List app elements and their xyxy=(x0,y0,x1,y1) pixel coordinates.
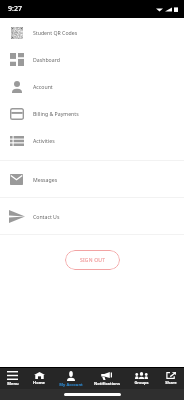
button[interactable]: Groups xyxy=(125,368,157,389)
staticText: Home xyxy=(33,380,45,385)
button[interactable]: Dashboard xyxy=(0,46,184,73)
button[interactable]: Share xyxy=(157,368,184,389)
button[interactable]: Notifications xyxy=(88,368,125,389)
staticText: Contact Us xyxy=(33,213,60,220)
button[interactable]: Activities xyxy=(0,127,184,154)
button[interactable]: My Account xyxy=(53,368,88,389)
staticText: Student QR Codes xyxy=(33,29,78,36)
button[interactable]: Account xyxy=(0,73,184,100)
button[interactable]: Home xyxy=(25,368,53,389)
staticText: SIGN OUT xyxy=(80,257,106,264)
staticText: 9:27 xyxy=(8,4,22,14)
staticText: Activities xyxy=(33,137,55,144)
staticText: Groups xyxy=(134,380,149,385)
staticText: My Account xyxy=(59,382,83,387)
staticText: Share xyxy=(165,380,177,385)
staticText: Messages xyxy=(33,176,58,183)
button[interactable]: SIGN OUT xyxy=(65,250,120,270)
button[interactable]: Menu xyxy=(0,368,25,389)
button[interactable]: Messages xyxy=(0,161,184,197)
staticText: Menu xyxy=(7,381,19,386)
staticText: Notifications xyxy=(94,381,120,386)
button[interactable]: Contact Us xyxy=(0,198,184,234)
staticText: Billing & Payments xyxy=(33,110,79,117)
staticText: Account xyxy=(33,83,53,90)
button[interactable]: Student QR Codes xyxy=(0,19,184,46)
staticText: Dashboard xyxy=(33,56,60,63)
button[interactable]: Billing & Payments xyxy=(0,100,184,127)
